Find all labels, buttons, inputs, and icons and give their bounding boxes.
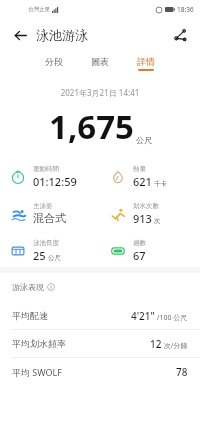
button[interactable]: 分段 [41,55,67,72]
staticText: 混合式 [33,211,66,225]
button[interactable]: Back [8,23,32,47]
button[interactable]: Share [168,23,192,47]
staticText: /100 公尺 [155,313,188,323]
staticText: 趟數 [133,239,146,247]
button[interactable]: 詳情 [133,55,159,72]
staticText: 划水次數 [133,202,159,210]
staticText: 游泳表現 [12,282,44,292]
staticText: 平均划水頻率 [12,338,66,349]
staticText: 913 [133,211,152,226]
staticText: 12 [150,337,162,351]
staticText: 熱量 [133,165,146,173]
staticText: 主泳姿 [33,202,53,210]
staticText: 詳情 [137,56,155,67]
staticText: 67 [133,248,146,263]
staticText: 01:12:59 [33,174,77,189]
staticText: 次 [154,217,161,225]
button[interactable]: 泳池長度 [0,239,100,263]
staticText: 4'21" [131,309,155,323]
staticText: 公尺 [136,135,152,145]
staticText: 18:36 [177,5,194,14]
button[interactable]: 圖表 [87,55,113,72]
button[interactable]: 主泳姿 [0,202,100,225]
staticText: 泳池游泳 [36,27,88,43]
button[interactable]: 運動時間 [0,165,100,189]
staticText: 621 [133,174,152,189]
button[interactable]: Info [47,283,55,291]
staticText: 25 [33,248,46,263]
staticText: 78 [176,365,188,379]
staticText: 平均 SWOLF [12,366,62,378]
staticText: 公尺 [48,254,61,262]
button[interactable]: 趟數 [100,239,200,263]
staticText: 台灣之星 [28,6,50,13]
staticText: 圖表 [91,56,109,67]
button[interactable]: 划水次數 [100,202,200,226]
button[interactable]: 平均划水頻率 [0,330,200,357]
button[interactable]: 平均 SWOLF [0,358,200,385]
button[interactable]: 平均配速 [0,302,200,329]
staticText: 次/分鐘 [162,341,188,351]
button[interactable]: 熱量 [100,165,200,189]
staticText: 平均配速 [12,310,48,321]
staticText: 1,675 [49,104,134,149]
staticText: 千卡 [154,180,167,188]
staticText: 分段 [45,56,63,67]
staticText: 泳池長度 [33,239,59,247]
staticText: 運動時間 [33,165,59,173]
staticText: 2021年3月21日 14:41 [0,87,200,98]
